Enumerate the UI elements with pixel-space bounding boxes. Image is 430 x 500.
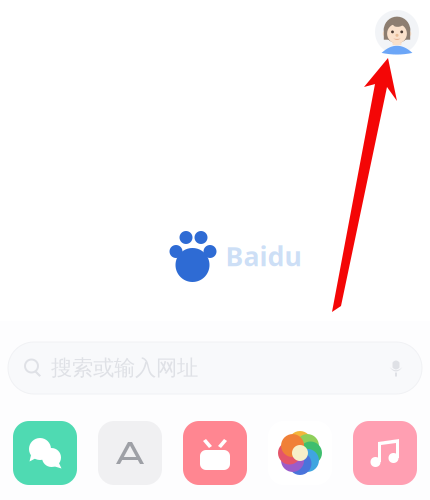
button[interactable]: App Store	[93, 418, 167, 488]
staticText: Baidu	[225, 238, 301, 274]
button[interactable]: Photos	[263, 418, 337, 488]
button[interactable]: Video	[178, 418, 252, 488]
button[interactable]: WeChat	[8, 418, 82, 488]
button[interactable]: Profile	[375, 10, 419, 54]
button[interactable]: Music	[348, 418, 422, 488]
staticText: 搜索或输入网址	[51, 355, 198, 381]
button[interactable]: 搜索或输入网址	[8, 342, 422, 394]
